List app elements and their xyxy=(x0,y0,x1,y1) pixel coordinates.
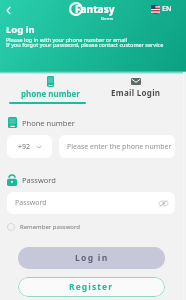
staticText: Password xyxy=(15,198,47,208)
button[interactable]: Back xyxy=(0,2,17,19)
button[interactable]: Language EN xyxy=(151,3,172,15)
button[interactable]: Show password xyxy=(158,198,169,209)
staticText: Register xyxy=(69,281,114,293)
staticText: phone number xyxy=(21,88,80,99)
button[interactable]: Password xyxy=(7,192,175,214)
button[interactable]: Register xyxy=(18,277,165,297)
staticText: +92 xyxy=(18,142,31,152)
staticText: Password xyxy=(22,175,56,185)
button[interactable]: Please enter the phone number xyxy=(59,135,175,158)
staticText: Log in xyxy=(75,252,109,264)
staticText: Gems xyxy=(101,16,114,21)
button[interactable]: Email Login xyxy=(89,76,182,98)
staticText: Remember password xyxy=(20,223,81,231)
staticText: Fantasy xyxy=(75,2,115,16)
button[interactable]: +92 xyxy=(7,135,52,158)
button[interactable]: Log in xyxy=(18,247,165,269)
staticText: Log in xyxy=(6,23,35,36)
staticText: Please log in with your phone number or … xyxy=(6,36,128,43)
staticText: EN xyxy=(162,4,172,14)
staticText: Phone number xyxy=(22,118,75,128)
staticText: If you forgot your password, please cont… xyxy=(6,41,164,48)
button[interactable]: phone number xyxy=(4,76,97,104)
staticText: Please enter the phone number xyxy=(67,142,172,152)
staticText: Email Login xyxy=(111,87,161,98)
button[interactable]: Remember password xyxy=(7,221,81,232)
